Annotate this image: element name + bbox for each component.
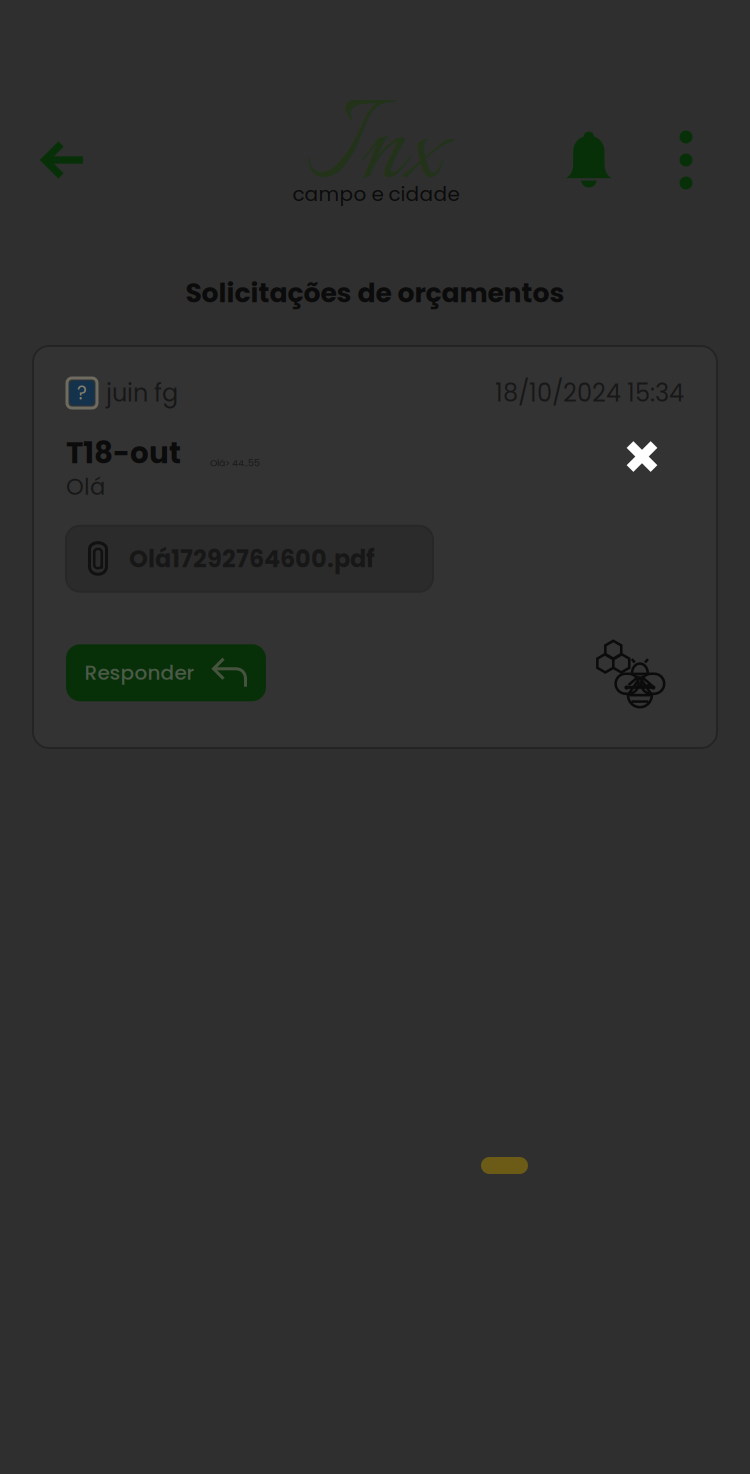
button[interactable]: Mais opções bbox=[661, 128, 711, 192]
button[interactable]: Notificações bbox=[558, 128, 620, 192]
button[interactable]: Responder bbox=[66, 644, 266, 701]
staticText: ? bbox=[77, 380, 87, 406]
staticText: Olá bbox=[66, 471, 105, 503]
staticText: Inx bbox=[307, 65, 445, 239]
staticText: 18/10/2024 15:34 bbox=[495, 376, 684, 410]
button[interactable]: Voltar bbox=[32, 128, 96, 192]
staticText: campo e cidade bbox=[292, 180, 459, 208]
staticText: Solicitações de orçamentos bbox=[185, 274, 564, 312]
button[interactable]: Fechar solicitação bbox=[620, 434, 664, 478]
button[interactable]: Olá17292764600.pdf bbox=[66, 526, 433, 592]
staticText: Olá> 44..55 bbox=[210, 456, 260, 470]
staticText: Responder bbox=[84, 659, 194, 687]
staticText: T18-out bbox=[66, 432, 181, 474]
staticText: Olá17292764600.pdf bbox=[129, 542, 375, 575]
staticText: juin fg bbox=[106, 376, 178, 410]
